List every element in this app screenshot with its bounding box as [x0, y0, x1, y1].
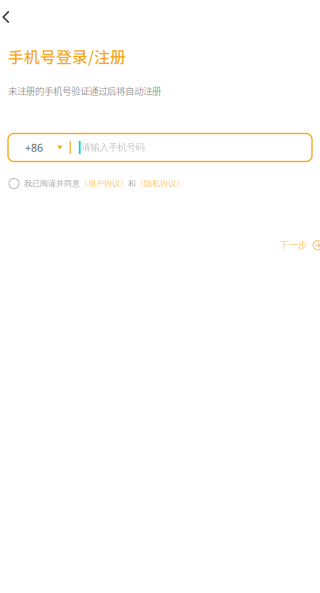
button[interactable]: Accept agreements: [9, 178, 19, 188]
staticText: 和: [128, 179, 136, 188]
staticText: 《隐私协议》: [136, 179, 184, 188]
staticText: 手机号登录/注册: [8, 45, 126, 68]
staticText: 未注册的手机号验证通过后将自动注册: [8, 84, 161, 97]
staticText: 《用户协议》: [80, 179, 128, 188]
button[interactable]: 《隐私协议》: [136, 179, 184, 188]
button[interactable]: 《用户协议》: [80, 179, 128, 188]
staticText: +86: [25, 140, 43, 155]
button[interactable]: 下一步: [279, 236, 320, 254]
staticText: 下一步: [279, 239, 306, 251]
button[interactable]: Select country code: [8, 134, 70, 161]
staticText: 请输入手机号码: [82, 142, 145, 153]
button[interactable]: Back: [0, 0, 23, 34]
staticText: 我已阅读并同意: [24, 179, 80, 188]
